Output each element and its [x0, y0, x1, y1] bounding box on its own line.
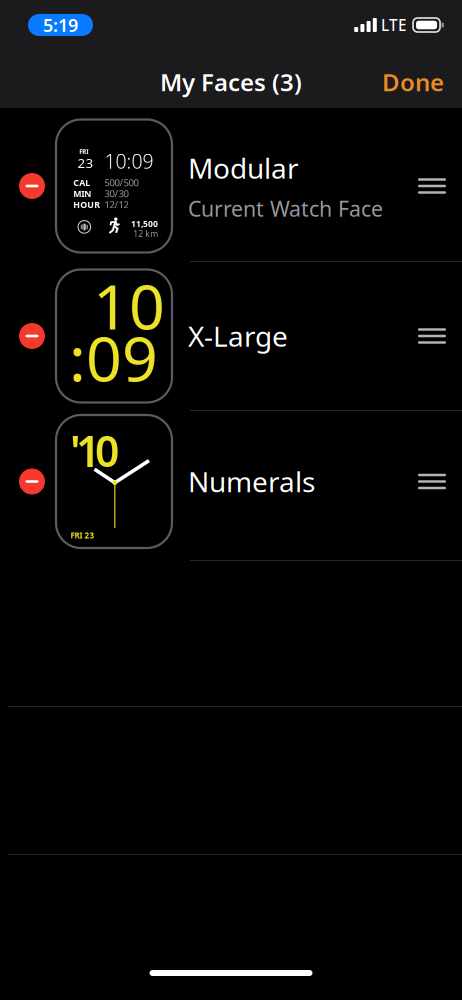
staticText: MIN	[73, 187, 91, 199]
staticText: 11,500	[131, 218, 158, 230]
staticText: 30/30	[104, 187, 128, 200]
staticText: 23	[78, 154, 94, 172]
staticText: Modular	[188, 149, 299, 186]
staticText: 10:09	[105, 148, 154, 174]
staticText: CAL	[73, 176, 90, 188]
staticText: X-Large	[188, 317, 288, 355]
button[interactable]: Delete watch face	[10, 151, 54, 221]
staticText: FRI	[79, 148, 88, 156]
staticText: 10	[93, 263, 165, 347]
staticText: Numerals	[188, 463, 315, 500]
button[interactable]: Reorder	[404, 446, 460, 516]
button[interactable]: Reorder	[404, 151, 460, 221]
button[interactable]: Delete watch face	[10, 446, 54, 516]
staticText: LTE	[381, 15, 407, 35]
staticText: '10	[70, 421, 119, 480]
button[interactable]: Reorder	[404, 301, 460, 371]
staticText: My Faces (3)	[160, 66, 302, 98]
button[interactable]: Done	[368, 55, 458, 109]
button[interactable]: Delete watch face	[10, 301, 54, 371]
staticText: HOUR	[73, 198, 100, 210]
staticText: 12/12	[104, 198, 128, 211]
staticText: FRI 23	[70, 530, 94, 541]
staticText: 500/500	[104, 176, 138, 189]
staticText: Done	[382, 66, 444, 98]
staticText: 5:19	[43, 13, 78, 37]
staticText: Current Watch Face	[188, 194, 383, 223]
staticText: :09	[69, 315, 158, 399]
staticText: 12 km	[133, 228, 158, 240]
